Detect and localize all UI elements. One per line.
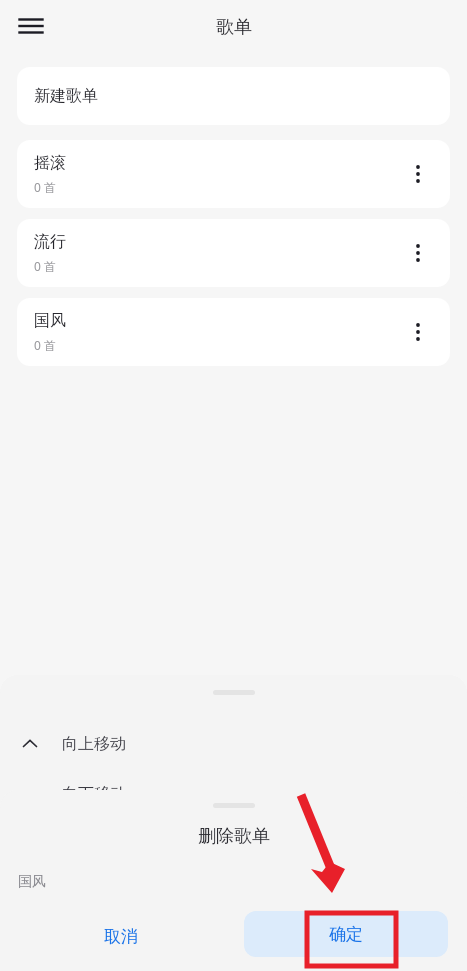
button[interactable]: 国风 xyxy=(17,298,450,366)
staticText: 0 首 xyxy=(34,258,56,274)
button[interactable]: More options xyxy=(402,316,434,348)
button[interactable]: Menu xyxy=(12,8,50,46)
button[interactable]: More options xyxy=(402,237,434,269)
button[interactable]: 向下移动 xyxy=(0,772,467,816)
staticText: 取消 xyxy=(104,926,138,947)
staticText: 摇滚 xyxy=(34,153,66,173)
button[interactable]: More options xyxy=(402,158,434,190)
staticText: 流行 xyxy=(34,232,66,252)
button[interactable]: 新建歌单 xyxy=(17,67,450,125)
staticText: 删除歌单 xyxy=(198,825,270,848)
button[interactable]: 流行 xyxy=(17,219,450,287)
staticText: 0 首 xyxy=(34,179,56,195)
button[interactable]: 取消 xyxy=(80,916,162,956)
staticText: 向上移动 xyxy=(62,734,126,754)
staticText: 国风 xyxy=(34,311,66,331)
staticText: 0 首 xyxy=(34,337,56,353)
button[interactable]: 向上移动 xyxy=(0,722,467,766)
staticText: 新建歌单 xyxy=(34,86,98,106)
staticText: 向下移动 xyxy=(62,784,126,804)
staticText: 国风 xyxy=(18,873,46,891)
button[interactable]: 确定 xyxy=(244,911,448,957)
button[interactable]: 摇滚 xyxy=(17,140,450,208)
staticText: 确定 xyxy=(329,924,363,945)
staticText: 歌单 xyxy=(216,16,252,39)
